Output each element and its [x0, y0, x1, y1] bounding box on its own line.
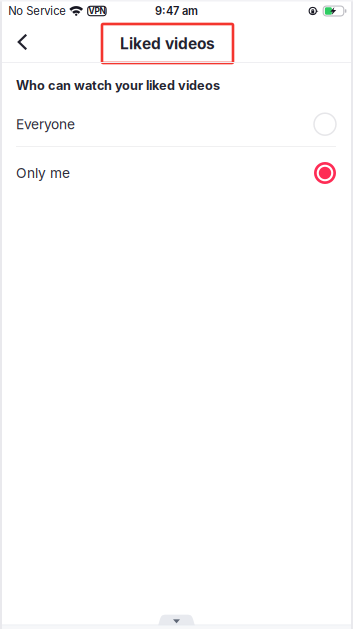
- staticText: Everyone: [16, 116, 75, 132]
- staticText: 9:47 am: [155, 4, 198, 18]
- staticText: Liked videos: [120, 34, 215, 53]
- staticText: No Service: [8, 4, 66, 18]
- button[interactable]: Everyone: [0, 98, 353, 146]
- staticText: Who can watch your liked videos: [16, 78, 220, 93]
- button[interactable]: Only me: [0, 147, 353, 195]
- staticText: VPN: [88, 6, 105, 16]
- staticText: Only me: [16, 165, 70, 181]
- button[interactable]: Back: [5, 22, 40, 62]
